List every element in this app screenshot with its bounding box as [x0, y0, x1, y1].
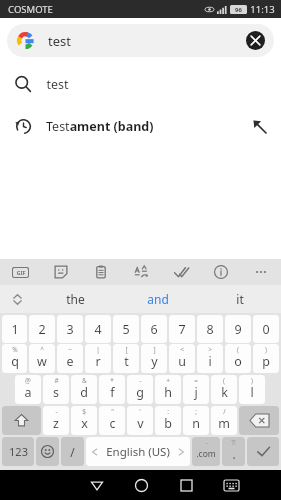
staticText: % [12, 345, 18, 354]
button[interactable]: test [7, 24, 274, 57]
staticText: a [24, 384, 32, 401]
button[interactable]: Emoji [36, 437, 59, 466]
button[interactable]: + [155, 375, 181, 404]
button[interactable]: Info [201, 259, 241, 285]
button[interactable]: - [192, 437, 220, 466]
button[interactable]: | [85, 344, 111, 373]
button[interactable]: 9 [225, 315, 251, 343]
staticText: u [178, 353, 186, 370]
button[interactable]: and [117, 285, 199, 313]
staticText: 0 [262, 321, 270, 338]
button[interactable]: Expand suggestions [0, 285, 34, 313]
button[interactable]: / [61, 437, 84, 466]
button[interactable]: @ [15, 375, 41, 404]
button[interactable]: the [34, 285, 117, 313]
staticText: o [234, 353, 242, 370]
button[interactable]: ) [239, 375, 265, 404]
button[interactable]: More [241, 259, 281, 285]
button[interactable]: Stickers [41, 259, 81, 285]
staticText: - [205, 438, 208, 447]
button[interactable]: ?! [222, 437, 245, 466]
button[interactable]: ; [183, 406, 209, 435]
staticText: ( [223, 376, 225, 385]
button[interactable]: $ [71, 406, 97, 435]
button[interactable]: ] [141, 344, 167, 373]
staticText: English (US) [106, 444, 170, 460]
button[interactable]: 6 [141, 315, 167, 343]
button[interactable]: Home [119, 470, 164, 500]
button[interactable]: Recents [164, 470, 209, 500]
button[interactable]: Backspace [239, 406, 279, 435]
staticText: ?! [231, 438, 236, 447]
button[interactable]: / [211, 406, 237, 435]
button[interactable]: 5 [113, 315, 139, 343]
button[interactable]: - [127, 375, 153, 404]
staticText: 4 [94, 321, 102, 338]
button[interactable]: Clear search [246, 31, 265, 50]
button[interactable]: ' [127, 406, 153, 435]
button[interactable]: < [169, 344, 195, 373]
staticText: 7 [178, 321, 186, 338]
button[interactable]: test [0, 63, 281, 105]
button[interactable]: # [43, 375, 69, 404]
staticText: test [48, 32, 71, 50]
button[interactable]: Space, English (US) [86, 437, 190, 466]
staticText: 5 [122, 321, 130, 338]
button[interactable]: Spell check [161, 259, 201, 285]
button[interactable]: > [197, 344, 223, 373]
button[interactable]: ( [225, 344, 251, 373]
button[interactable]: [ [113, 344, 139, 373]
staticText: ; [195, 407, 197, 416]
button[interactable]: Back [74, 470, 119, 500]
staticText: test [46, 76, 69, 93]
staticText: # [54, 376, 59, 385]
staticText: i [208, 353, 212, 370]
staticText: [ [125, 345, 128, 354]
staticText: ' [139, 407, 141, 416]
staticText: Testament (band) [46, 118, 154, 135]
staticText: z [53, 415, 59, 432]
button[interactable]: Enter [247, 437, 279, 466]
button[interactable]: ( [211, 375, 237, 404]
button[interactable]: = [183, 375, 209, 404]
button[interactable]: GIF [0, 259, 41, 285]
button[interactable]: Hide keyboard [209, 470, 254, 500]
staticText: b [164, 415, 172, 432]
button[interactable]: Insert suggestion [249, 116, 269, 136]
button[interactable]: % [2, 344, 27, 373]
staticText: ) [251, 376, 253, 385]
button[interactable]: " [99, 406, 125, 435]
button[interactable]: ) [253, 344, 279, 373]
staticText: * [110, 376, 114, 385]
button[interactable]: 2 [29, 315, 55, 343]
staticText: / [70, 444, 75, 460]
button[interactable]: 7 [169, 315, 195, 343]
button[interactable]: 0 [253, 315, 279, 343]
button[interactable]: Clipboard [81, 259, 121, 285]
button[interactable]: Translate [121, 259, 161, 285]
staticText: / [223, 407, 226, 416]
button[interactable]: 3 [57, 315, 83, 343]
staticText: w [37, 353, 47, 370]
button[interactable]: ^ [29, 344, 55, 373]
staticText: GIF [16, 269, 26, 276]
button[interactable]: : [155, 406, 181, 435]
button[interactable]: it [199, 285, 281, 313]
button[interactable]: 123 [2, 437, 34, 466]
staticText: ) [265, 345, 267, 354]
staticText: = [194, 376, 198, 385]
button[interactable]: Shift [2, 406, 41, 435]
staticText: 3 [66, 321, 74, 338]
button[interactable]: & [71, 375, 97, 404]
button[interactable]: 4 [85, 315, 111, 343]
button[interactable]: ~ [57, 344, 83, 373]
button[interactable]: 8 [197, 315, 223, 343]
button[interactable]: Testament (band) [0, 105, 281, 147]
button[interactable]: 1 [2, 315, 27, 343]
staticText: r [95, 353, 101, 370]
staticText: f [110, 384, 115, 401]
button[interactable]: * [99, 375, 125, 404]
staticText: 9 [234, 321, 242, 338]
staticText: l [250, 384, 254, 401]
button[interactable]: - [43, 406, 69, 435]
